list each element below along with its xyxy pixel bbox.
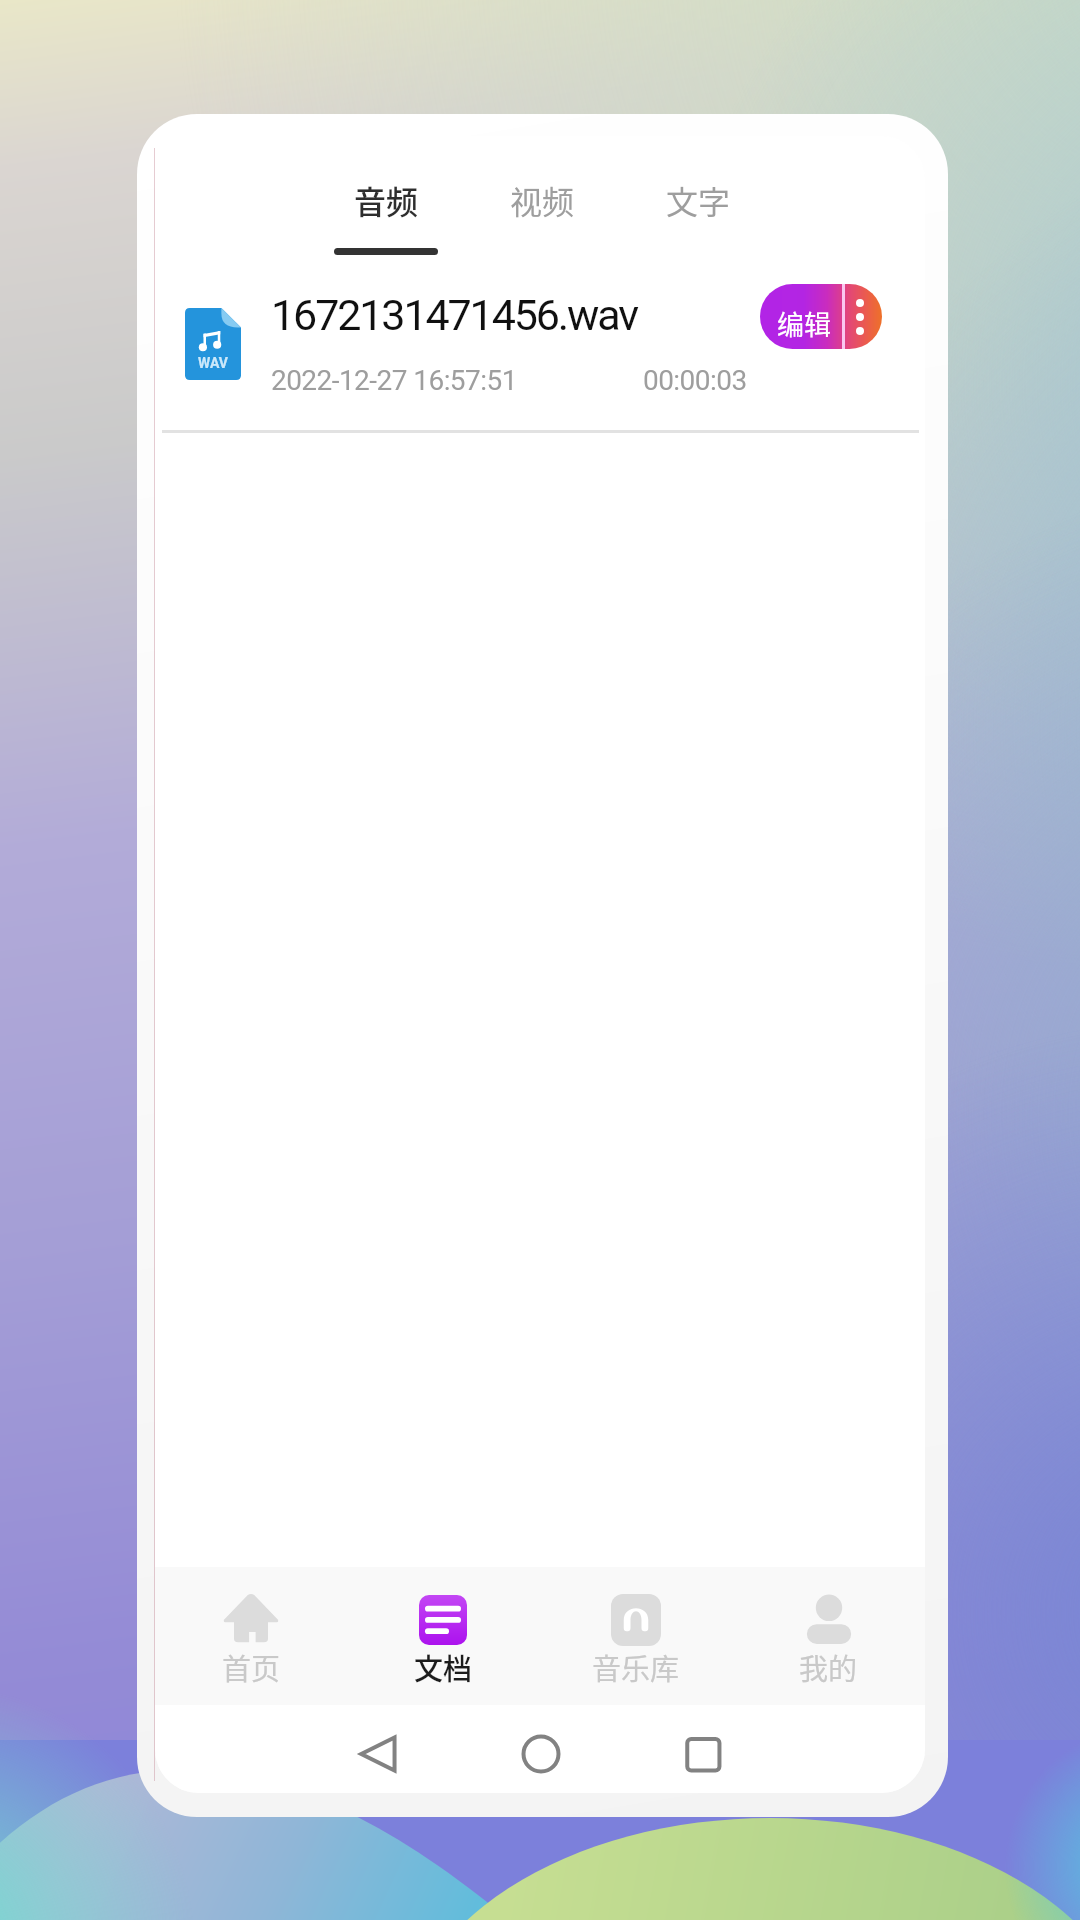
staticText: 首页 (222, 1646, 281, 1688)
button[interactable]: 文字 (620, 136, 776, 266)
staticText: 2022-12-27 16:57:51 (271, 364, 517, 397)
button[interactable]: Back (341, 1719, 411, 1789)
staticText: 文字 (666, 177, 731, 223)
button[interactable]: Recents (668, 1719, 738, 1789)
staticText: 音频 (354, 177, 419, 223)
button[interactable]: 文档 (347, 1567, 539, 1705)
staticText: 编辑 (777, 304, 831, 343)
button[interactable]: 编辑 (760, 284, 882, 349)
button[interactable]: 视频 (464, 136, 620, 266)
button[interactable]: Home (506, 1719, 576, 1789)
button[interactable]: 音频 (308, 136, 464, 266)
staticText: 音乐库 (592, 1646, 680, 1688)
staticText: 视频 (510, 177, 575, 223)
staticText: 1672131471456.wav (271, 290, 638, 340)
button[interactable]: 我的 (732, 1567, 925, 1705)
staticText: WAV (198, 355, 229, 371)
staticText: 00:00:03 (643, 364, 747, 397)
staticText: 文档 (414, 1646, 473, 1688)
button[interactable]: 音乐库 (539, 1567, 732, 1705)
staticText: 我的 (799, 1646, 858, 1688)
button[interactable]: WAV (155, 266, 925, 430)
button[interactable]: 首页 (155, 1567, 347, 1705)
